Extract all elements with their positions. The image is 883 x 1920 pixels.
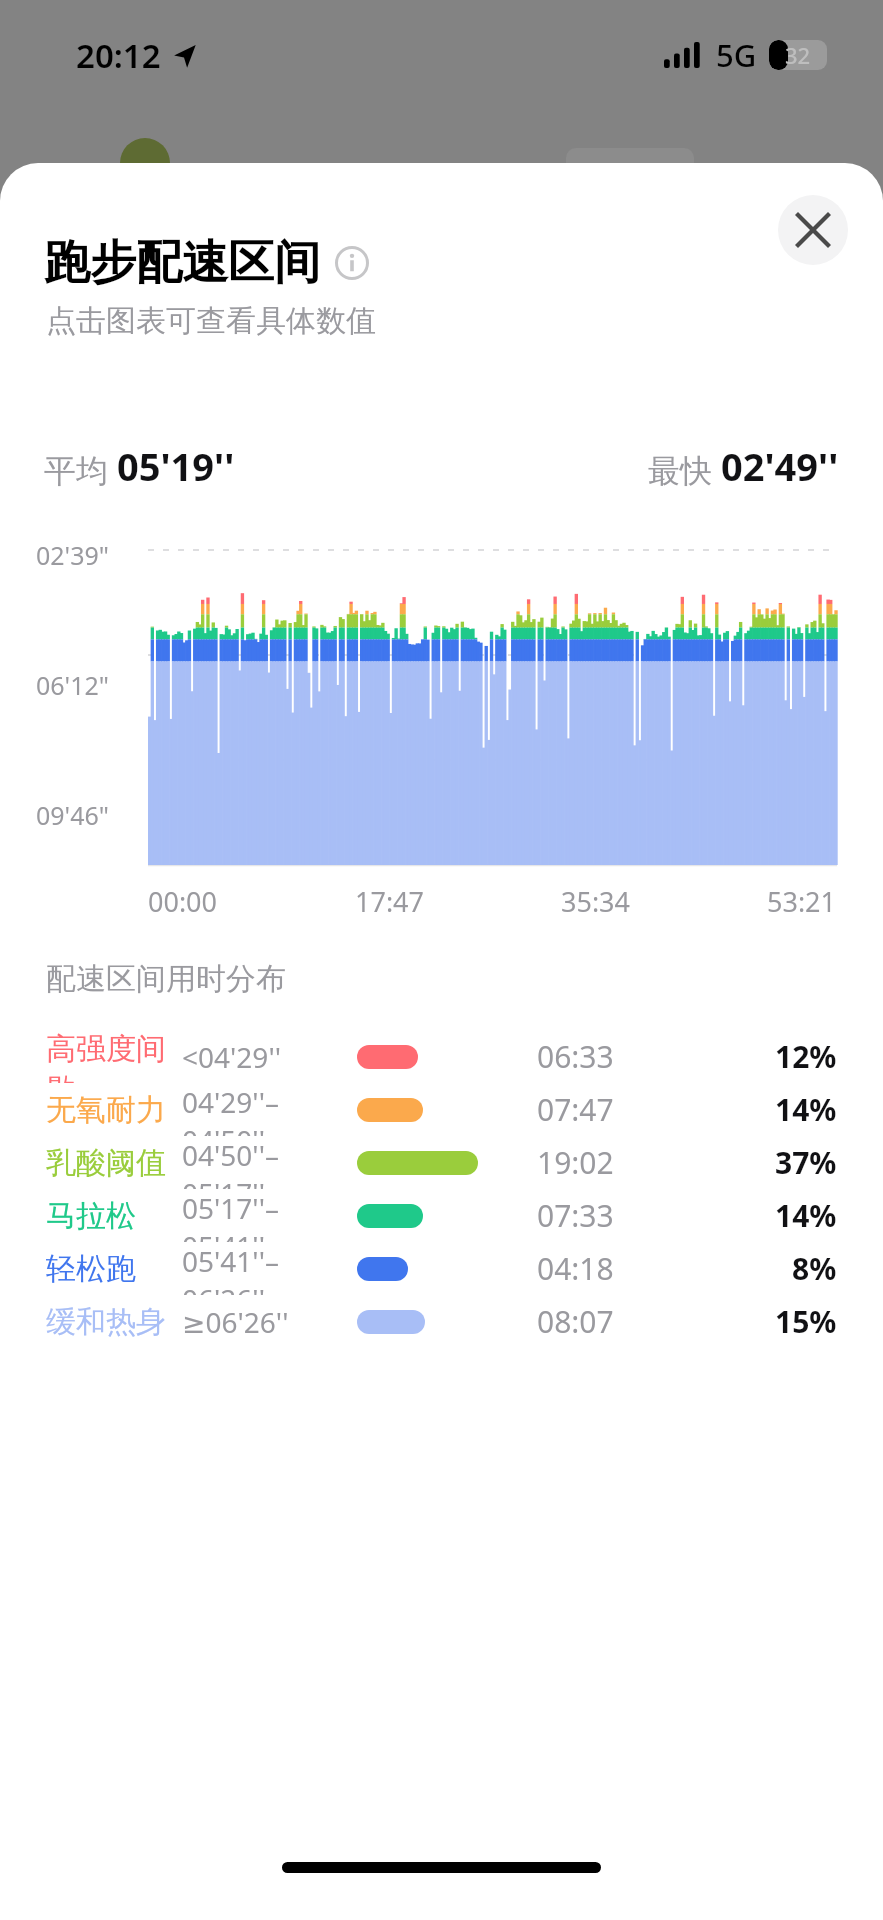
staticText: 07:33 [537, 1195, 614, 1236]
button[interactable] [148, 520, 837, 865]
staticText: 轻松跑 [46, 1250, 136, 1288]
staticText: 12% [775, 1036, 837, 1077]
staticText: ≥06'26'' [182, 1303, 289, 1341]
staticText: 06'12" [36, 668, 110, 702]
staticText: 07:47 [537, 1089, 614, 1130]
staticText: 高强度间歇 [46, 1030, 182, 1083]
staticText: 马拉松 [46, 1197, 136, 1235]
staticText: 缓和热身 [46, 1303, 166, 1341]
staticText: 05'17''–05'41'' [182, 1189, 357, 1242]
button[interactable]: 无氧耐力 [46, 1083, 837, 1136]
staticText: 35:34 [561, 883, 631, 920]
staticText: 15% [775, 1301, 837, 1342]
staticText: 04:18 [537, 1248, 614, 1289]
staticText: 04'50''–05'17'' [182, 1136, 357, 1189]
button[interactable]: Close [778, 195, 848, 265]
button[interactable]: Info [334, 245, 370, 281]
staticText: 17:47 [355, 883, 425, 920]
staticText: 平均 [44, 448, 117, 492]
button[interactable]: 缓和热身 [46, 1295, 837, 1348]
staticText: 14% [775, 1195, 837, 1236]
staticText: 19:02 [537, 1142, 614, 1183]
staticText: 06:33 [537, 1036, 614, 1077]
staticText: 09'46" [36, 798, 110, 832]
staticText: 5G [716, 34, 757, 76]
staticText: 最快 [648, 448, 721, 492]
staticText: 04'29''–04'50'' [182, 1083, 357, 1136]
staticText: 53:21 [767, 883, 837, 920]
staticText: 点击图表可查看具体数值 [46, 302, 376, 340]
staticText: 14% [775, 1089, 837, 1130]
staticText: 无氧耐力 [46, 1091, 166, 1129]
staticText: 08:07 [537, 1301, 614, 1342]
staticText: 20:12 [76, 33, 161, 78]
button[interactable]: 乳酸阈值 [46, 1136, 837, 1189]
staticText: 37% [775, 1142, 837, 1183]
button[interactable]: 高强度间歇 [46, 1030, 837, 1083]
staticText: 配速区间用时分布 [46, 960, 286, 998]
staticText: 05'19'' [117, 440, 235, 492]
staticText: 8% [792, 1248, 837, 1289]
staticText: 32 [785, 40, 811, 70]
button[interactable]: 轻松跑 [46, 1242, 837, 1295]
staticText: 05'41''–06'26'' [182, 1242, 357, 1295]
staticText: 跑步配速区间 [44, 234, 320, 292]
button[interactable]: 马拉松 [46, 1189, 837, 1242]
staticText: 02'49'' [721, 440, 839, 492]
staticText: 00:00 [148, 883, 218, 920]
staticText: <04'29'' [182, 1038, 281, 1076]
staticText: 02'39" [36, 538, 110, 572]
staticText: 乳酸阈值 [46, 1144, 166, 1182]
